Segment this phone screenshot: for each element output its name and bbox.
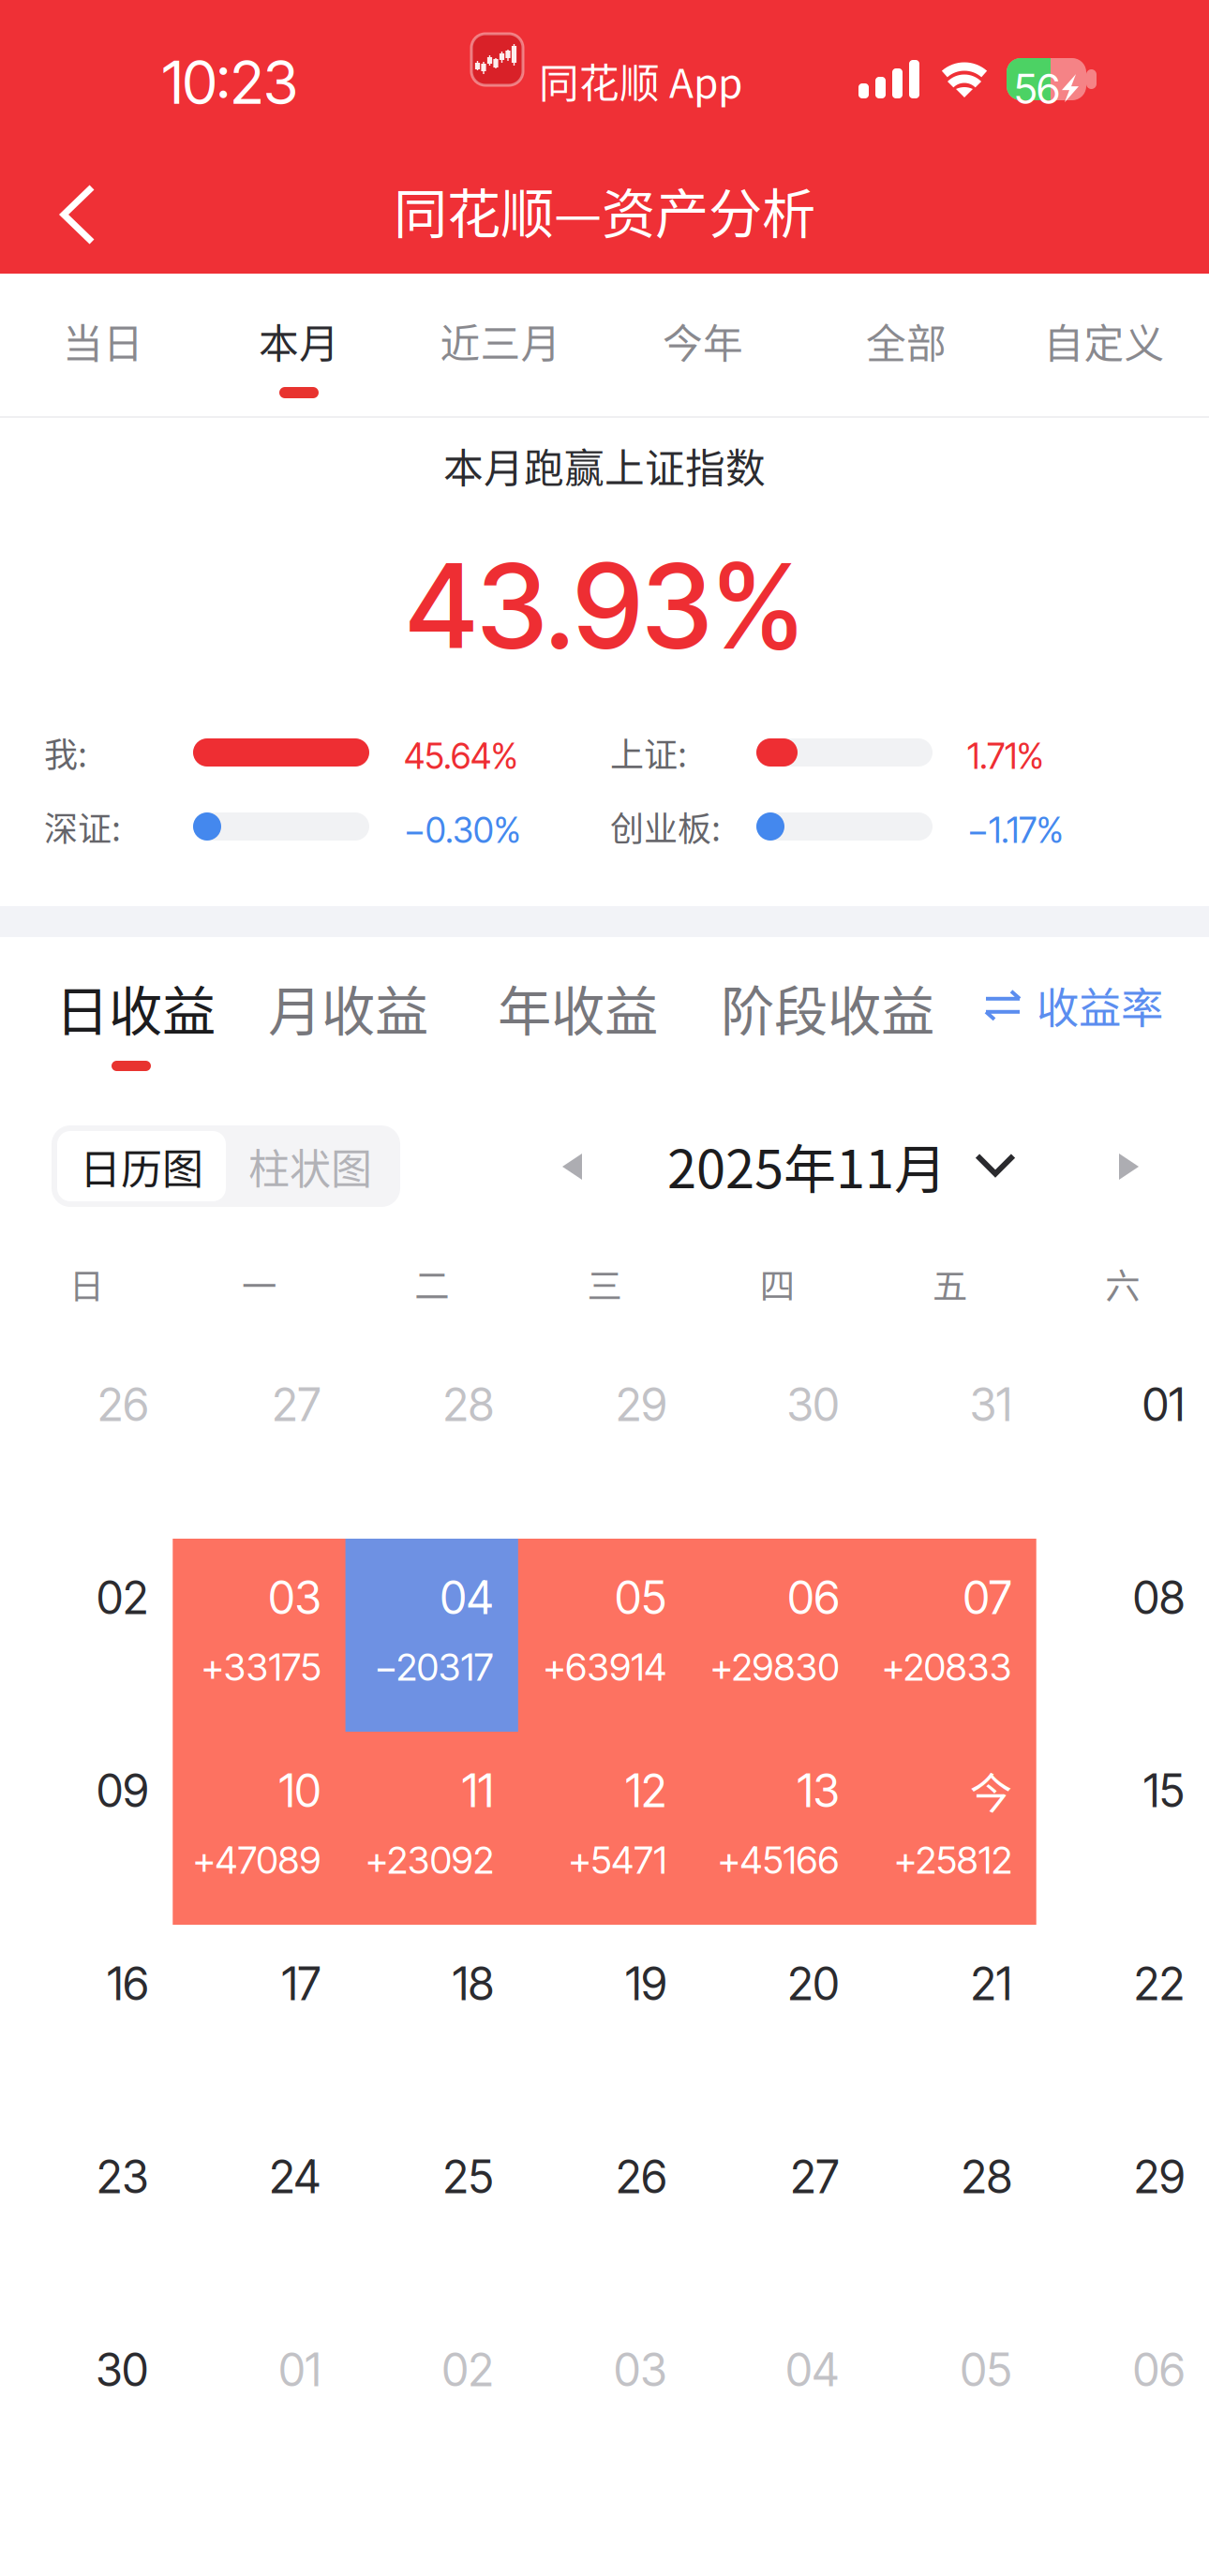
button[interactable]: 28 bbox=[864, 2115, 1036, 2308]
button[interactable]: 日历图 bbox=[57, 1131, 226, 1201]
button[interactable]: 03 bbox=[173, 1536, 345, 1729]
button[interactable]: 02 bbox=[345, 2308, 518, 2501]
staticText: 02 bbox=[97, 1571, 148, 1625]
button[interactable]: 柱状图 bbox=[226, 1131, 395, 1201]
button[interactable]: 03 bbox=[518, 2308, 691, 2501]
button[interactable]: 06 bbox=[1036, 2308, 1209, 2501]
button[interactable]: 月收益 bbox=[268, 937, 418, 1076]
staticText: 28 bbox=[443, 1377, 494, 1432]
button[interactable]: 27 bbox=[691, 2115, 864, 2308]
staticText: 31 bbox=[970, 1377, 1012, 1432]
staticText: 13 bbox=[797, 1764, 839, 1818]
staticText: 柱状图 bbox=[248, 1136, 372, 1196]
button[interactable]: 阶段收益 bbox=[721, 937, 927, 1076]
button[interactable]: 自定义 bbox=[1015, 274, 1193, 416]
button[interactable]: 收益率 bbox=[984, 975, 1163, 1036]
staticText: 27 bbox=[272, 1377, 321, 1432]
staticText: 01 bbox=[279, 2343, 321, 2397]
button[interactable]: 16 bbox=[0, 1922, 173, 2115]
button[interactable]: 01 bbox=[173, 2308, 345, 2501]
staticText: 05 bbox=[615, 1571, 666, 1625]
staticText: 阶段收益 bbox=[721, 968, 934, 1046]
button[interactable]: 25 bbox=[345, 2115, 518, 2308]
staticText: +23092 bbox=[365, 1837, 494, 1883]
staticText: +5471 bbox=[568, 1837, 666, 1883]
button[interactable]: 10 bbox=[173, 1729, 345, 1922]
button[interactable]: 2025年11月 bbox=[667, 1127, 1016, 1203]
staticText: 29 bbox=[616, 1377, 666, 1432]
staticText: 24 bbox=[270, 2150, 321, 2204]
staticText: 30 bbox=[96, 2343, 148, 2397]
button[interactable]: 19 bbox=[518, 1922, 691, 2115]
staticText: 创业板: bbox=[610, 802, 721, 851]
staticText: 18 bbox=[453, 1957, 494, 2011]
staticText: 03 bbox=[614, 2343, 666, 2397]
button[interactable]: 26 bbox=[0, 1343, 173, 1536]
staticText: 年收益 bbox=[498, 968, 658, 1046]
staticText: 本月 bbox=[259, 312, 339, 370]
button[interactable]: 04 bbox=[691, 2308, 864, 2501]
button[interactable]: 本月 bbox=[210, 274, 388, 416]
button[interactable]: 17 bbox=[173, 1922, 345, 2115]
button[interactable]: 09 bbox=[0, 1729, 173, 1922]
staticText: 10 bbox=[279, 1764, 321, 1818]
staticText: 1.71% bbox=[967, 735, 1044, 777]
button[interactable]: 05 bbox=[518, 1536, 691, 1729]
button[interactable]: 18 bbox=[345, 1922, 518, 2115]
staticText: 12 bbox=[625, 1764, 666, 1818]
staticText: −1.17% bbox=[967, 809, 1064, 851]
staticText: 26 bbox=[616, 2150, 666, 2204]
staticText: 月收益 bbox=[268, 968, 428, 1046]
staticText: 09 bbox=[97, 1764, 148, 1818]
button[interactable]: 30 bbox=[691, 1343, 864, 1536]
button[interactable]: 11 bbox=[345, 1729, 518, 1922]
button[interactable]: 当日 bbox=[14, 274, 192, 416]
button[interactable]: 02 bbox=[0, 1536, 173, 1729]
staticText: 07 bbox=[963, 1571, 1012, 1625]
button[interactable]: 28 bbox=[345, 1343, 518, 1536]
button[interactable]: 今年 bbox=[614, 274, 792, 416]
staticText: 23 bbox=[97, 2150, 148, 2204]
button[interactable]: 04 bbox=[345, 1536, 518, 1729]
button[interactable]: 06 bbox=[691, 1536, 864, 1729]
button[interactable]: 近三月 bbox=[411, 274, 590, 416]
staticText: +45166 bbox=[717, 1837, 839, 1883]
button[interactable]: 07 bbox=[864, 1536, 1036, 1729]
button[interactable]: 全部 bbox=[817, 274, 995, 416]
staticText: 深证: bbox=[44, 802, 121, 851]
button[interactable]: 29 bbox=[1036, 2115, 1209, 2308]
button[interactable]: 27 bbox=[173, 1343, 345, 1536]
button[interactable]: 20 bbox=[691, 1922, 864, 2115]
staticText: 全部 bbox=[866, 312, 947, 370]
button[interactable]: 31 bbox=[864, 1343, 1036, 1536]
button[interactable]: 08 bbox=[1036, 1536, 1209, 1729]
staticText: −20317 bbox=[375, 1644, 494, 1690]
button[interactable]: 01 bbox=[1036, 1343, 1209, 1536]
staticText: 10:23 bbox=[162, 47, 298, 118]
button[interactable]: Back bbox=[17, 154, 139, 275]
button[interactable]: 23 bbox=[0, 2115, 173, 2308]
button[interactable]: 13 bbox=[691, 1729, 864, 1922]
staticText: 2025年11月 bbox=[667, 1127, 947, 1203]
staticText: 我: bbox=[44, 728, 87, 777]
staticText: +33175 bbox=[201, 1644, 321, 1690]
button[interactable]: 24 bbox=[173, 2115, 345, 2308]
button[interactable]: 22 bbox=[1036, 1922, 1209, 2115]
button[interactable]: 年收益 bbox=[498, 937, 648, 1076]
button[interactable]: 日收益 bbox=[55, 937, 205, 1076]
button[interactable]: 21 bbox=[864, 1922, 1036, 2115]
button[interactable]: 12 bbox=[518, 1729, 691, 1922]
button[interactable]: 26 bbox=[518, 2115, 691, 2308]
button[interactable]: Previous month bbox=[549, 1143, 596, 1190]
button[interactable]: 30 bbox=[0, 2308, 173, 2501]
button[interactable]: 29 bbox=[518, 1343, 691, 1536]
staticText: 30 bbox=[787, 1377, 839, 1432]
button[interactable]: 05 bbox=[864, 2308, 1036, 2501]
button[interactable]: 今 bbox=[864, 1729, 1036, 1922]
staticText: 三 bbox=[587, 1258, 622, 1309]
button[interactable]: 15 bbox=[1036, 1729, 1209, 1922]
staticText: 19 bbox=[625, 1957, 666, 2011]
staticText: −0.30% bbox=[404, 809, 521, 851]
button[interactable]: Next month bbox=[1106, 1143, 1153, 1190]
staticText: 15 bbox=[1143, 1764, 1185, 1818]
